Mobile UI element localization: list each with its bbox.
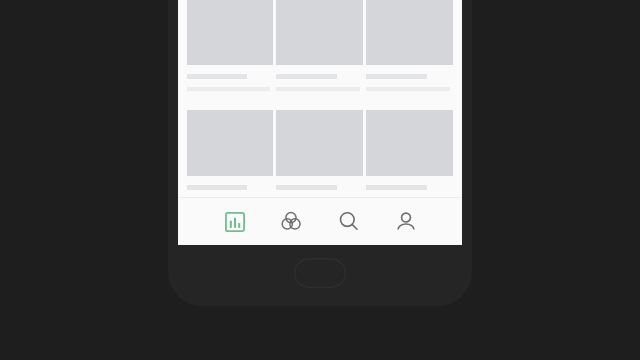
button[interactable]: Dashboard: [206, 198, 263, 245]
button[interactable]: [276, 110, 363, 190]
button[interactable]: Search: [320, 198, 377, 245]
button[interactable]: [366, 110, 453, 190]
button[interactable]: [187, 110, 273, 190]
button[interactable]: [187, 0, 273, 91]
button[interactable]: [366, 0, 453, 91]
button[interactable]: Groups: [263, 198, 320, 245]
button[interactable]: [276, 0, 363, 91]
button[interactable]: Profile: [377, 198, 434, 245]
